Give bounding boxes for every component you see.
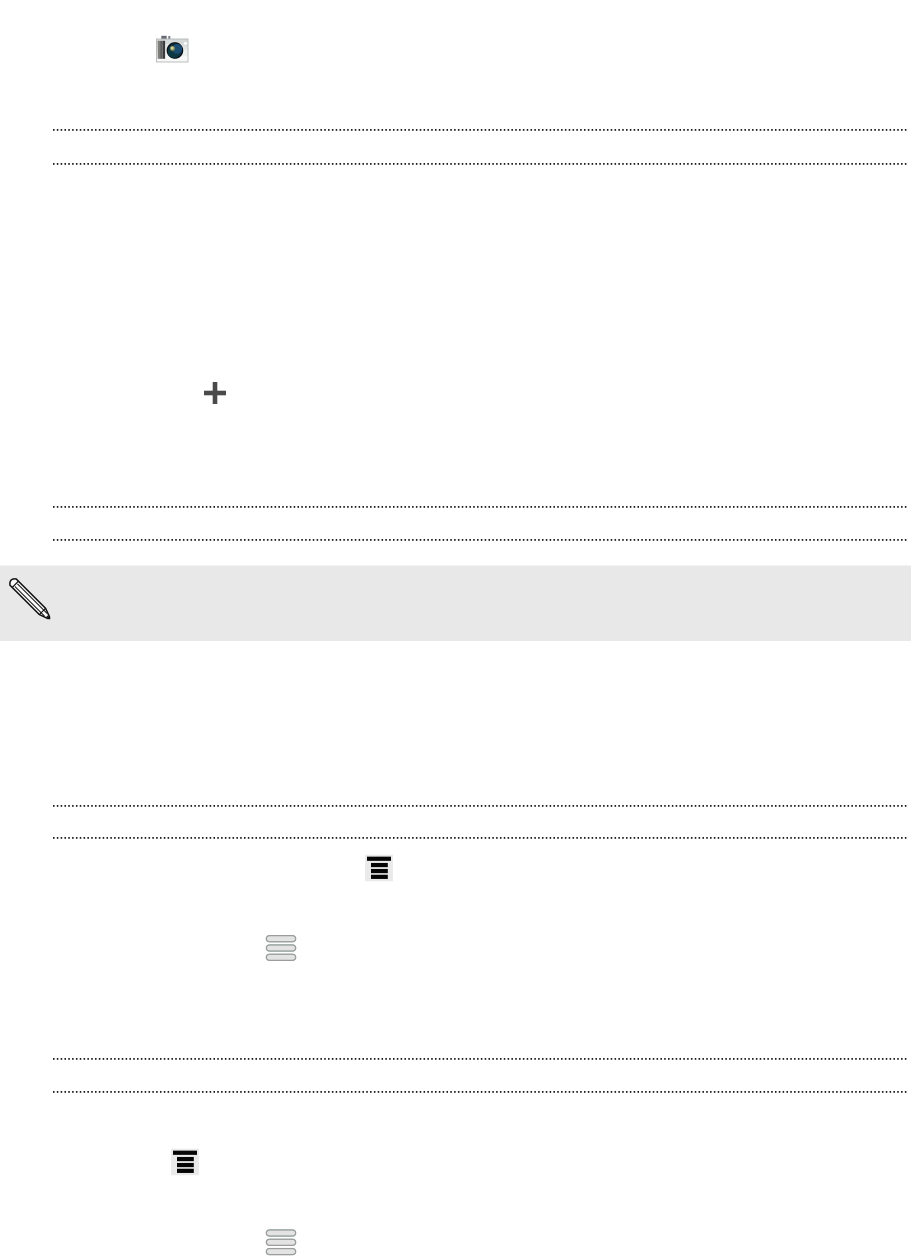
button[interactable]: Add [203,381,227,405]
button[interactable]: Camera [155,35,189,63]
button[interactable]: Menu [266,1230,296,1255]
button[interactable]: Edit [8,577,52,621]
button[interactable]: Align centre [365,855,393,881]
button[interactable]: Align centre [171,1149,199,1175]
button[interactable]: Menu [266,935,296,960]
